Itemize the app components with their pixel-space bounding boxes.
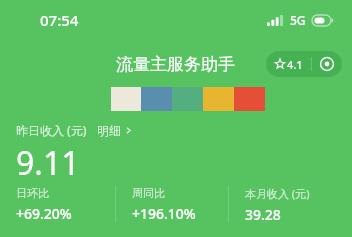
button[interactable]: 本月收入 (元)	[229, 186, 352, 222]
staticText: 39.28	[245, 205, 281, 222]
staticText: 明细	[97, 123, 121, 138]
staticText: 流量主服务助手	[116, 54, 235, 75]
staticText: +69.20%	[16, 204, 72, 222]
button[interactable]: 4.1	[266, 51, 311, 77]
staticText: 07:54	[40, 10, 79, 30]
staticText: 4.1	[287, 57, 303, 72]
staticText: 昨日收入 (元)	[16, 122, 87, 138]
button[interactable]: More options	[312, 51, 342, 77]
staticText: 周同比	[132, 186, 165, 200]
staticText: +196.10%	[132, 204, 196, 222]
button[interactable]: 日环比	[0, 186, 115, 222]
staticText: 日环比	[16, 186, 49, 200]
button[interactable]: 明细	[97, 123, 132, 138]
staticText: 9.11	[16, 141, 80, 185]
staticText: 5G	[290, 12, 306, 28]
button[interactable]: 周同比	[116, 186, 228, 222]
staticText: 本月收入 (元)	[245, 186, 310, 201]
